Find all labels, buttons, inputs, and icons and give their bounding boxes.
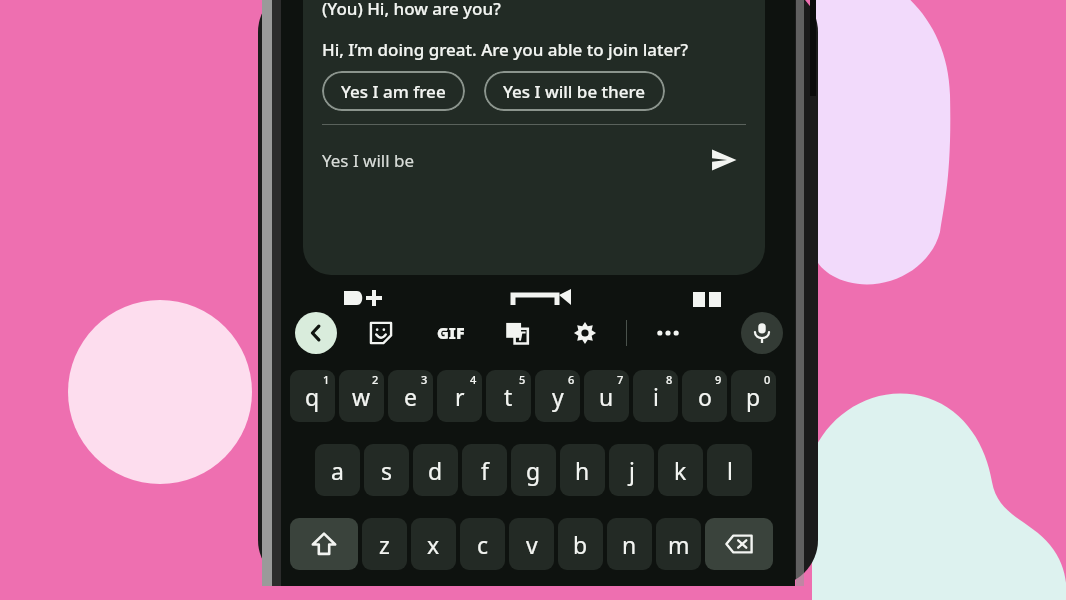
button[interactable]: Stickers xyxy=(360,312,402,354)
button[interactable]: More options xyxy=(647,312,689,354)
staticText: s xyxy=(381,455,393,486)
staticText: 6 xyxy=(568,372,575,387)
staticText: Yes I am free xyxy=(341,80,446,103)
staticText: k xyxy=(674,455,687,486)
staticText: 4 xyxy=(470,372,477,387)
staticText: w xyxy=(352,381,371,412)
staticText: h xyxy=(575,455,590,486)
staticText: f xyxy=(481,455,489,486)
staticText: j xyxy=(629,455,635,486)
button[interactable]: i xyxy=(633,370,678,422)
staticText: 7 xyxy=(617,372,624,387)
staticText: z xyxy=(379,529,390,560)
staticText: 8 xyxy=(666,372,673,387)
button[interactable]: Settings xyxy=(564,312,606,354)
staticText: x xyxy=(427,529,440,560)
button[interactable]: b xyxy=(558,518,603,570)
button[interactable]: y xyxy=(535,370,580,422)
button[interactable]: a xyxy=(315,444,360,496)
staticText: (You) Hi, how are you? xyxy=(322,0,501,20)
staticText: 3 xyxy=(421,372,428,387)
button[interactable]: f xyxy=(462,444,507,496)
button[interactable]: Yes I am free xyxy=(322,71,465,111)
button[interactable]: Send xyxy=(702,138,746,182)
button[interactable]: u xyxy=(584,370,629,422)
staticText: a xyxy=(331,455,344,486)
button[interactable]: g xyxy=(511,444,556,496)
button[interactable]: o xyxy=(682,370,727,422)
staticText: r xyxy=(455,381,465,412)
staticText: Yes I will be xyxy=(322,149,702,172)
staticText: l xyxy=(727,455,733,486)
button[interactable]: Yes I will be there xyxy=(484,71,665,111)
button[interactable]: d xyxy=(413,444,458,496)
staticText: 9 xyxy=(715,372,722,387)
button[interactable]: r xyxy=(437,370,482,422)
staticText: 1 xyxy=(323,372,330,387)
button[interactable]: Backspace xyxy=(705,518,773,570)
button[interactable]: Translate xyxy=(496,312,538,354)
staticText: 0 xyxy=(764,372,771,387)
staticText: q xyxy=(305,381,320,412)
button[interactable]: e xyxy=(388,370,433,422)
staticText: i xyxy=(653,381,659,412)
staticText: p xyxy=(746,381,761,412)
button[interactable]: w xyxy=(339,370,384,422)
staticText: y xyxy=(552,381,564,412)
staticText: b xyxy=(573,529,588,560)
button[interactable]: x xyxy=(411,518,456,570)
button[interactable]: p xyxy=(731,370,776,422)
button[interactable]: Shift xyxy=(290,518,358,570)
staticText: m xyxy=(668,529,690,560)
staticText: n xyxy=(622,529,637,560)
button[interactable]: h xyxy=(560,444,605,496)
button[interactable]: k xyxy=(658,444,703,496)
button[interactable]: Voice input xyxy=(741,312,783,354)
staticText: c xyxy=(477,529,489,560)
button[interactable]: t xyxy=(486,370,531,422)
button[interactable]: c xyxy=(460,518,505,570)
button[interactable]: j xyxy=(609,444,654,496)
staticText: GIF xyxy=(437,322,465,344)
button[interactable]: l xyxy=(707,444,752,496)
button[interactable]: q xyxy=(290,370,335,422)
staticText: o xyxy=(698,381,712,412)
staticText: e xyxy=(404,381,417,412)
button[interactable]: n xyxy=(607,518,652,570)
button[interactable]: Back xyxy=(295,312,337,354)
staticText: t xyxy=(504,381,513,412)
staticText: 2 xyxy=(372,372,379,387)
button[interactable]: m xyxy=(656,518,701,570)
staticText: Hi, I’m doing great. Are you able to joi… xyxy=(322,38,698,61)
button[interactable]: z xyxy=(362,518,407,570)
staticText: 5 xyxy=(519,372,526,387)
button[interactable]: v xyxy=(509,518,554,570)
button[interactable]: s xyxy=(364,444,409,496)
staticText: g xyxy=(526,455,541,486)
staticText: d xyxy=(428,455,443,486)
button[interactable]: GIF xyxy=(428,312,474,354)
staticText: Yes I will be there xyxy=(503,80,646,103)
staticText: u xyxy=(599,381,614,412)
staticText: v xyxy=(526,529,538,560)
